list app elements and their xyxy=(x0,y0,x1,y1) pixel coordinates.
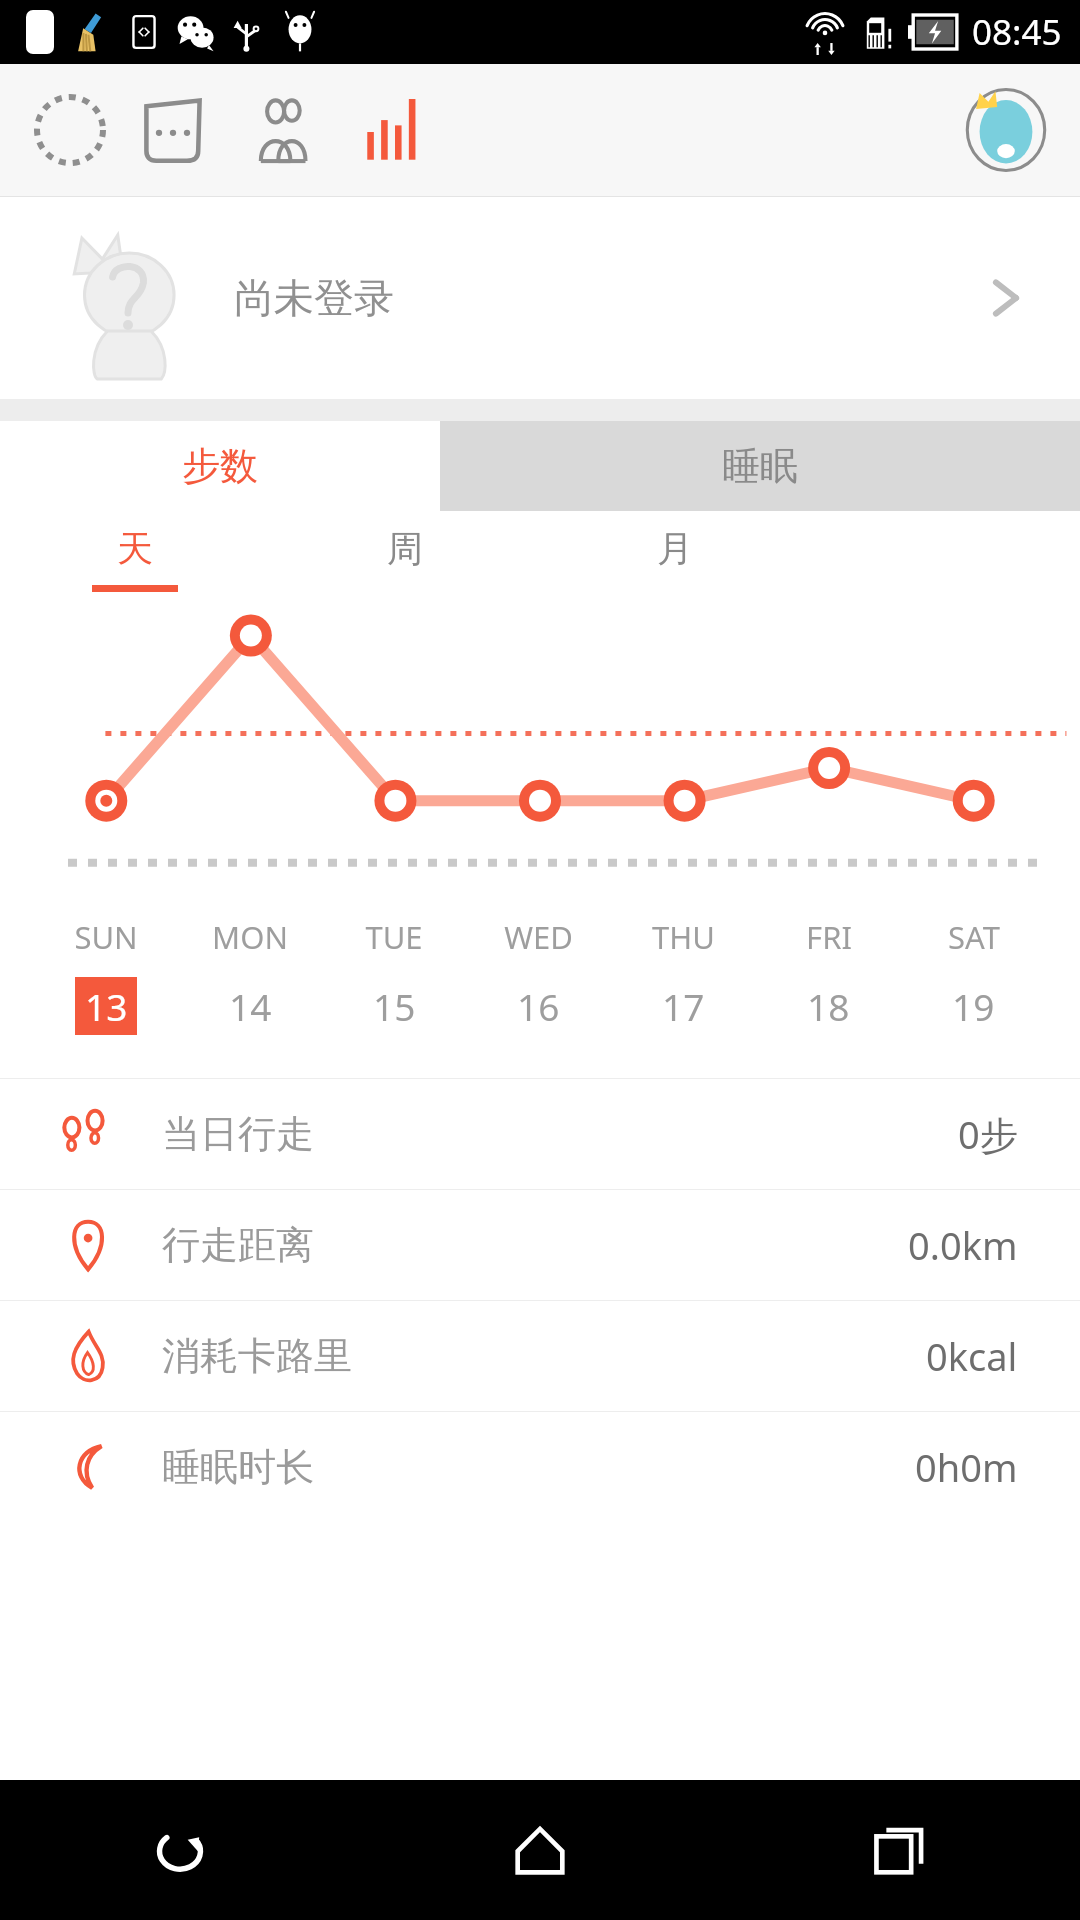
staticText: 19 xyxy=(952,981,995,1031)
staticText: 14 xyxy=(229,981,272,1031)
staticText: MON xyxy=(212,916,288,958)
staticText: SAT xyxy=(948,916,1000,958)
button[interactable]: Statistics xyxy=(338,75,448,185)
staticText: 15 xyxy=(373,981,416,1031)
staticText: 17 xyxy=(662,981,705,1031)
staticText: THU xyxy=(652,916,715,958)
staticText: FRI xyxy=(806,916,852,958)
button[interactable]: Back xyxy=(0,1780,360,1920)
staticText: 消耗卡路里 xyxy=(162,1332,352,1380)
staticText: WED xyxy=(504,916,573,958)
staticText: 月 xyxy=(657,526,693,571)
staticText: 行走距离 xyxy=(162,1221,314,1269)
staticText: 08:45 xyxy=(972,8,1062,56)
staticText: 0h0m xyxy=(915,1441,1018,1493)
button[interactable]: Profile xyxy=(958,82,1054,178)
button[interactable]: 月 xyxy=(540,511,810,606)
button[interactable]: 尚未登录 xyxy=(0,197,1080,399)
staticText: 睡眠时长 xyxy=(162,1443,314,1491)
staticText: 16 xyxy=(517,981,560,1031)
staticText: 天 xyxy=(117,526,153,571)
staticText: 0步 xyxy=(958,1108,1018,1160)
staticText: 0.0km xyxy=(908,1219,1018,1271)
button[interactable]: Recents xyxy=(720,1780,1080,1920)
button[interactable]: 消耗卡路里 xyxy=(0,1301,1080,1411)
staticText: 步数 xyxy=(182,442,258,490)
button[interactable]: Messages xyxy=(118,75,228,185)
staticText: TUE xyxy=(365,916,423,958)
button[interactable]: Friends xyxy=(228,75,338,185)
button[interactable]: 当日行走 xyxy=(0,1079,1080,1189)
staticText: 13 xyxy=(85,981,128,1031)
staticText: 当日行走 xyxy=(162,1110,314,1158)
button[interactable]: 天 xyxy=(0,511,270,606)
button[interactable]: Scan xyxy=(22,82,118,178)
staticText: 尚未登录 xyxy=(234,273,394,323)
button[interactable]: 睡眠时长 xyxy=(0,1412,1080,1522)
button[interactable]: Home xyxy=(360,1780,720,1920)
button[interactable]: 行走距离 xyxy=(0,1190,1080,1300)
staticText: SUN xyxy=(74,916,138,958)
button[interactable]: 周 xyxy=(270,511,540,606)
staticText: 18 xyxy=(807,981,850,1031)
button[interactable]: 睡眠 xyxy=(440,421,1080,511)
staticText: 周 xyxy=(387,526,423,571)
staticText: 睡眠 xyxy=(722,442,798,490)
staticText: 0kcal xyxy=(926,1330,1018,1382)
button[interactable]: 步数 xyxy=(0,421,440,511)
